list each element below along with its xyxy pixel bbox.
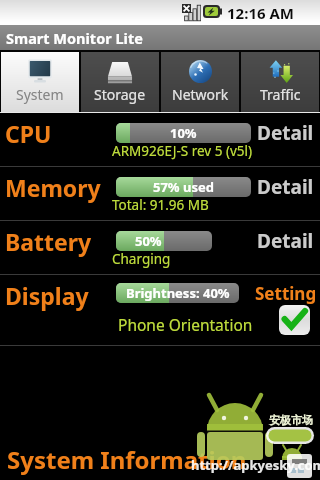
button[interactable]: Battery	[0, 221, 320, 274]
staticText: Setting	[255, 282, 317, 305]
staticText: http://apkyesky.com	[191, 456, 320, 474]
staticText: 57% used	[153, 178, 214, 196]
button[interactable]: Network	[161, 52, 239, 112]
button[interactable]: Memory	[0, 167, 320, 220]
staticText: Detail	[257, 174, 314, 200]
staticText: Storage	[94, 85, 146, 104]
staticText: Total: 91.96 MB	[112, 196, 209, 214]
button[interactable]: Phone Orientation checkbox	[279, 305, 310, 335]
staticText: CPU	[5, 118, 52, 149]
staticText: 10%	[170, 124, 197, 142]
button[interactable]: Traffic	[241, 52, 319, 112]
staticText: ARM926EJ-S rev 5 (v5l)	[112, 142, 253, 160]
staticText: Detail	[257, 120, 314, 146]
staticText: Display	[5, 280, 89, 311]
staticText: Brightness: 40%	[126, 284, 230, 302]
staticText: Smart Monitor Lite	[6, 28, 143, 48]
staticText: Detail	[257, 228, 314, 254]
button[interactable]: Storage	[81, 52, 159, 112]
staticText: Memory	[5, 172, 101, 203]
staticText: Traffic	[260, 85, 301, 104]
staticText: 安极市场	[269, 413, 313, 427]
staticText: Network	[172, 85, 229, 104]
staticText: Battery	[5, 226, 92, 257]
button[interactable]: System	[1, 52, 79, 112]
staticText: Phone Orientation	[118, 314, 253, 335]
staticText: 50%	[135, 232, 162, 250]
button[interactable]: System Information	[7, 443, 247, 476]
staticText: 12:16 AM	[227, 3, 294, 23]
staticText: System	[16, 85, 64, 104]
button[interactable]: CPU	[0, 113, 320, 166]
staticText: Charging	[112, 250, 171, 268]
